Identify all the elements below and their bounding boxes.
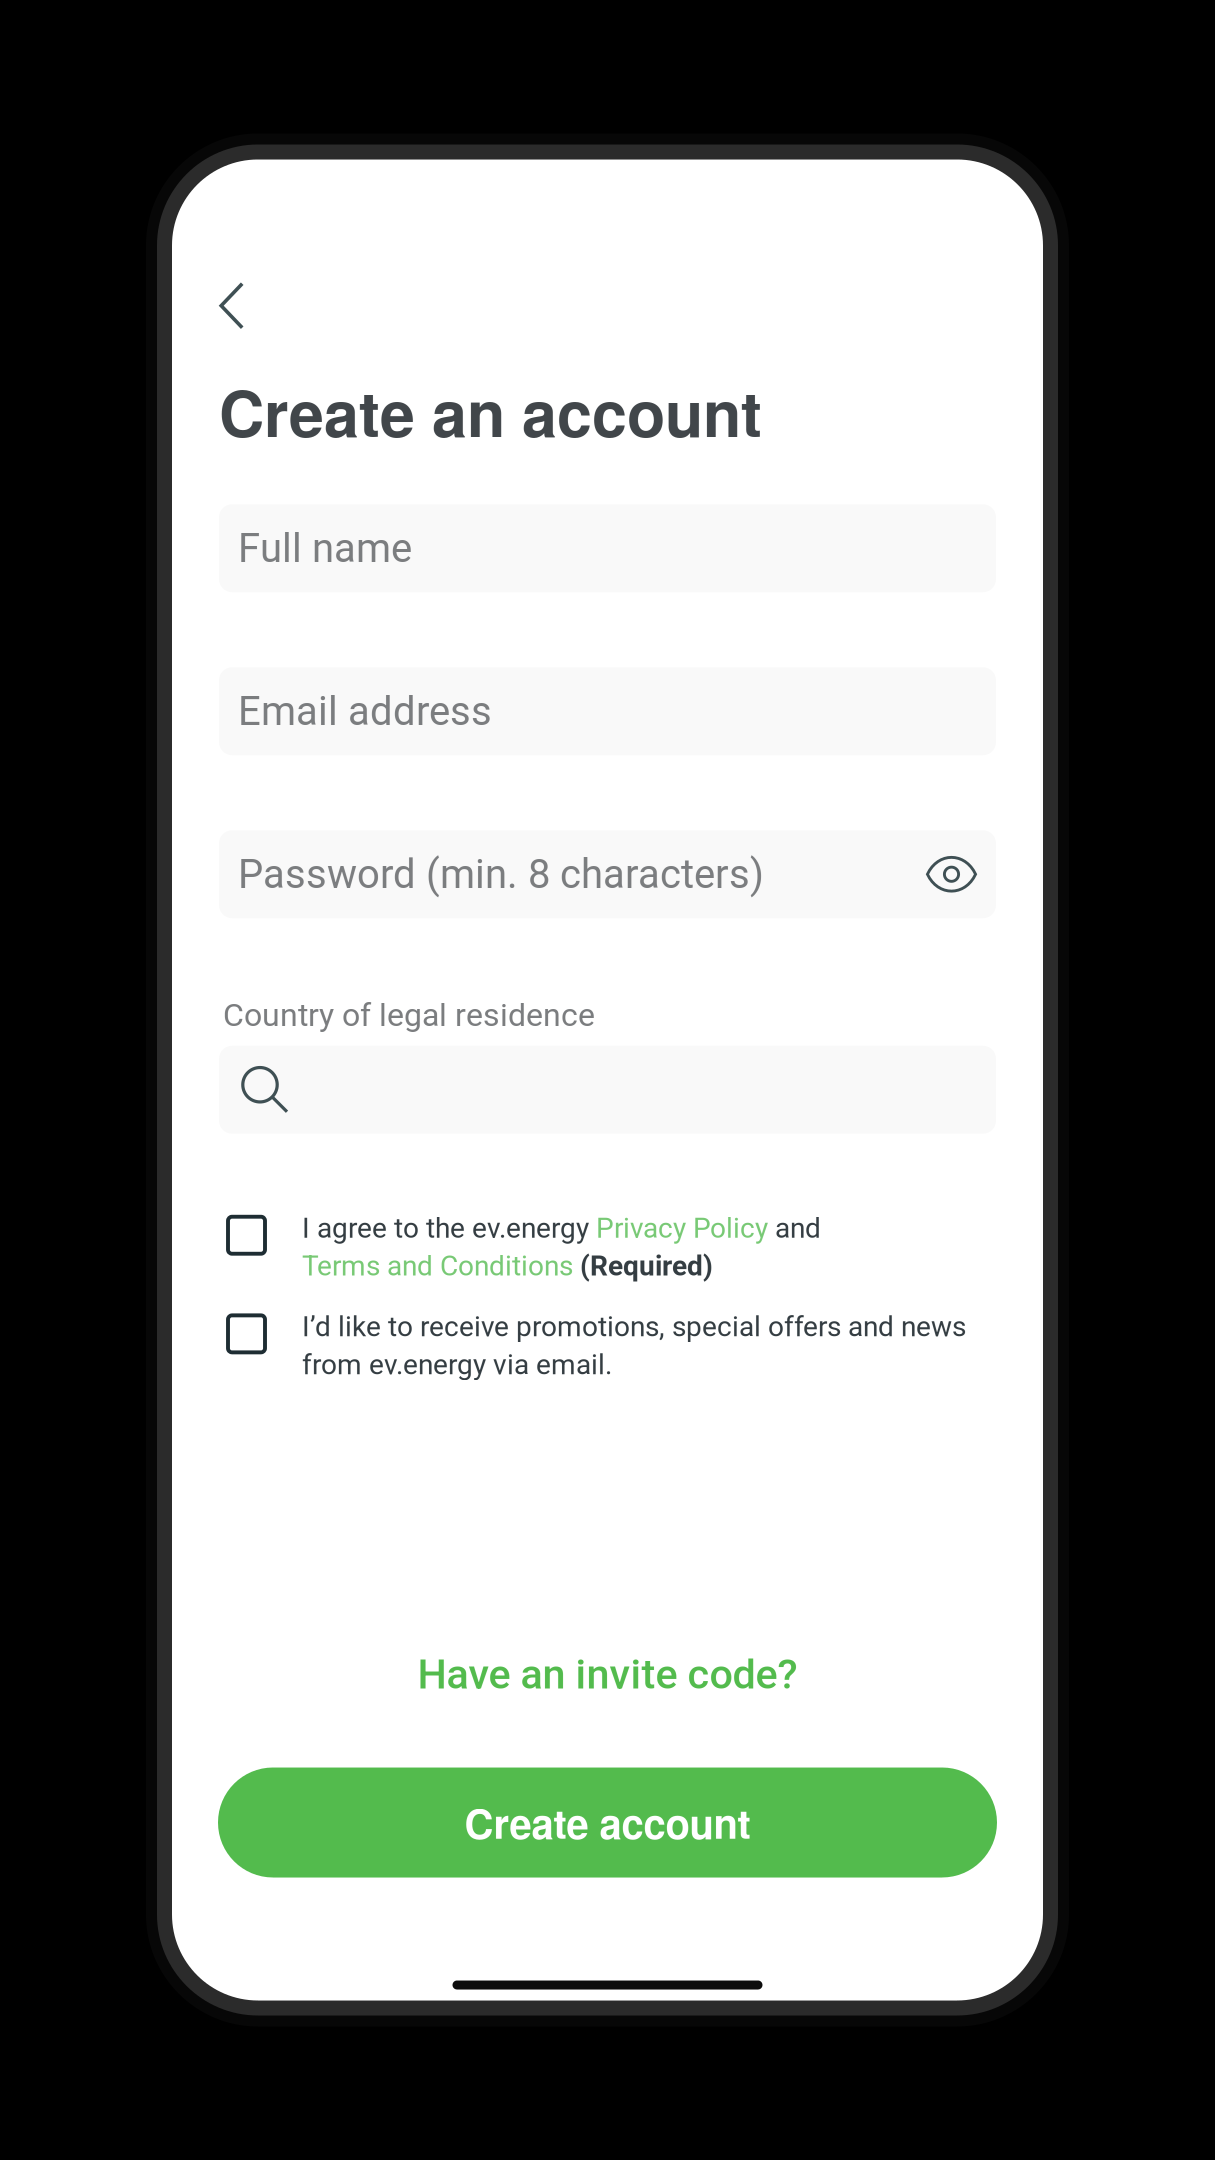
staticText: Have an invite code? bbox=[417, 1650, 797, 1698]
staticText: from ev.energy via email. bbox=[302, 1348, 612, 1381]
staticText: (Required) bbox=[573, 1250, 713, 1282]
staticText: and bbox=[768, 1212, 821, 1244]
staticText: Country of legal residence bbox=[223, 996, 595, 1034]
staticText: Create an account bbox=[219, 366, 762, 456]
button[interactable]: Create account bbox=[172, 1767, 1043, 1877]
button[interactable] bbox=[172, 1046, 1043, 1134]
staticText: Privacy Policy bbox=[596, 1212, 768, 1244]
button[interactable]: Show password bbox=[914, 835, 996, 913]
staticText: Password (min. 8 characters) bbox=[238, 851, 764, 898]
button[interactable]: Back bbox=[172, 159, 277, 346]
staticText: Email address bbox=[238, 688, 492, 735]
staticText: Terms and Conditions bbox=[302, 1250, 573, 1282]
button[interactable]: I’d like to receive promotions, special … bbox=[226, 1310, 996, 1381]
staticText: I agree to the ev.energy bbox=[302, 1212, 596, 1244]
button[interactable]: Have an invite code? bbox=[172, 1626, 1043, 1714]
staticText: Full name bbox=[238, 525, 412, 572]
staticText: I’d like to receive promotions, special … bbox=[302, 1310, 966, 1343]
button[interactable]: I agree to the ev.energy bbox=[226, 1212, 996, 1282]
staticText: Create account bbox=[464, 1794, 750, 1851]
